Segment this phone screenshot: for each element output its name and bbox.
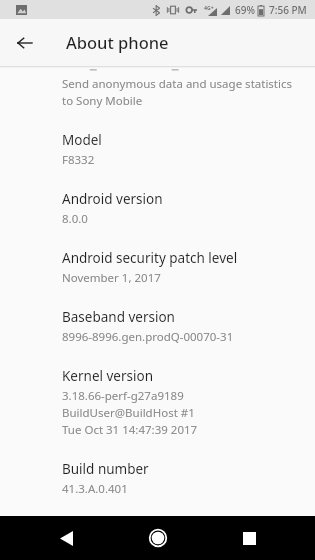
- staticText: Android version: [62, 190, 163, 208]
- button[interactable]: Navigate up: [10, 28, 40, 58]
- button[interactable]: Build number: [0, 460, 315, 497]
- staticText: About phone: [66, 31, 169, 53]
- button[interactable]: Android version: [0, 190, 315, 227]
- button[interactable]: Kernel version: [0, 367, 315, 438]
- staticText: Build number: [62, 460, 149, 478]
- button[interactable]: [0, 69, 315, 74]
- staticText: 69%: [235, 3, 255, 17]
- button[interactable]: Model: [0, 131, 315, 168]
- staticText: 7:56 PM: [269, 3, 307, 17]
- staticText: 3.18.66-perf-g27a9189: [62, 388, 184, 404]
- staticText: F8332: [62, 152, 95, 168]
- staticText: Baseband version: [62, 308, 175, 326]
- button[interactable]: Baseband version: [0, 308, 315, 345]
- staticText: 4G+: [204, 4, 214, 11]
- staticText: 41.3.A.0.401: [62, 481, 128, 497]
- staticText: Model: [62, 131, 102, 149]
- staticText: Send anonymous data and usage statistics: [62, 76, 293, 92]
- button[interactable]: Recent apps: [223, 516, 275, 560]
- staticText: Android security patch level: [62, 249, 238, 267]
- button[interactable]: Back: [40, 516, 92, 560]
- button[interactable]: Android security patch level: [0, 249, 315, 286]
- staticText: 8996-8996.gen.prodQ-00070-31: [62, 329, 234, 345]
- staticText: BuildUser@BuildHost #1: [62, 405, 195, 421]
- staticText: Kernel version: [62, 367, 154, 385]
- button[interactable]: Home: [132, 516, 184, 560]
- staticText: Tue Oct 31 14:47:39 2017: [62, 422, 198, 438]
- staticText: to Sony Mobile: [62, 93, 143, 109]
- staticText: November 1, 2017: [62, 270, 161, 286]
- button[interactable]: Send anonymous data and usage statistics: [0, 76, 315, 109]
- staticText: 8.0.0: [62, 211, 88, 227]
